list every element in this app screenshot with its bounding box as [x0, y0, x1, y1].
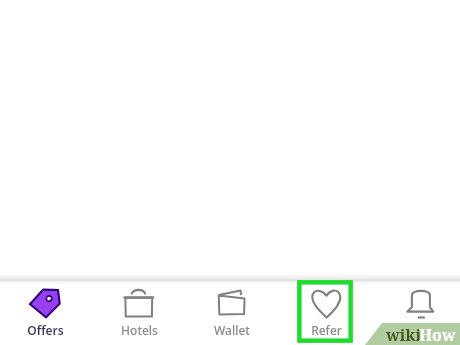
staticText: Offers [27, 322, 64, 338]
other: Wallet [217, 288, 247, 318]
button[interactable]: Offers [0, 281, 91, 344]
button[interactable]: Refer [280, 281, 372, 344]
staticText: Wallet [214, 322, 250, 338]
staticText: wiki [386, 324, 422, 345]
other: Refer [311, 288, 342, 320]
staticText: Alerts [403, 322, 437, 338]
staticText: How [419, 324, 456, 345]
button[interactable]: Hotels [93, 281, 185, 344]
button[interactable]: Alerts [374, 281, 460, 344]
other: Offers [29, 288, 61, 320]
staticText: Refer [311, 322, 342, 338]
other: Hotels [124, 288, 154, 318]
button[interactable]: Wallet [186, 281, 278, 344]
staticText: Hotels [121, 322, 158, 338]
other: Alerts [405, 288, 436, 320]
